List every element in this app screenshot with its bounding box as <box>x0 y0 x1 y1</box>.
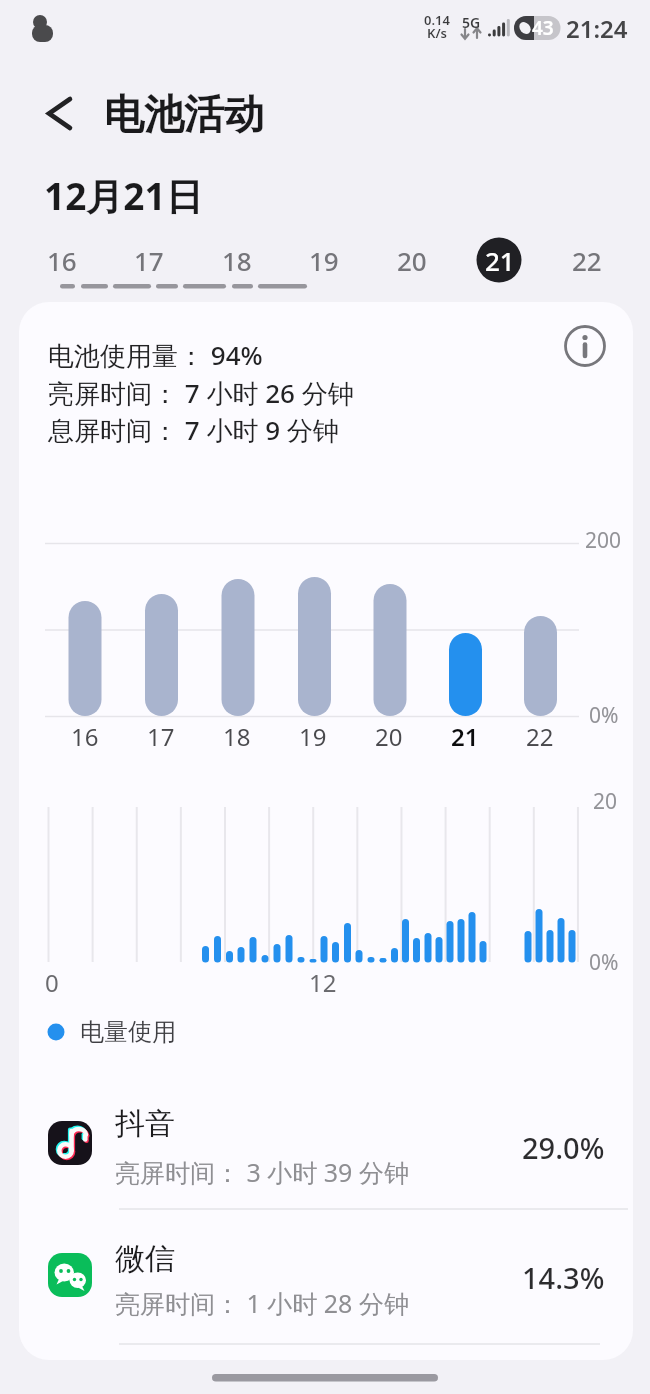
staticText: 19 <box>299 720 327 753</box>
staticText: 29.0% <box>522 1128 605 1167</box>
staticText: 12 <box>309 966 337 999</box>
button[interactable]: 22 <box>554 227 620 293</box>
staticText: 18 <box>222 243 252 278</box>
staticText: 0.14 <box>424 11 450 29</box>
staticText: 21 <box>485 243 515 278</box>
button[interactable]: 21 <box>467 227 533 293</box>
staticText: 电池使用量： 94% <box>48 337 263 373</box>
staticText: 微信 <box>115 1240 175 1278</box>
staticText: 0 <box>45 966 59 999</box>
staticText: 14.3% <box>522 1258 605 1297</box>
staticText: 21 <box>451 720 479 753</box>
staticText: 0% <box>589 701 619 730</box>
staticText: 16 <box>71 720 99 753</box>
staticText: 20 <box>375 720 403 753</box>
staticText: 22 <box>572 243 602 278</box>
button[interactable]: 20 <box>379 227 445 293</box>
button[interactable] <box>19 1090 633 1209</box>
staticText: 5G <box>462 13 481 32</box>
staticText: 抖音 <box>115 1105 175 1143</box>
button[interactable]: 19 <box>291 227 357 293</box>
staticText: 22 <box>526 720 554 753</box>
staticText: 电量使用 <box>80 1017 176 1047</box>
button[interactable]: 18 <box>204 227 270 293</box>
button[interactable] <box>36 86 92 142</box>
staticText: 亮屏时间： 1 小时 28 分钟 <box>115 1286 409 1320</box>
staticText: 200 <box>585 526 622 555</box>
staticText: 20 <box>397 243 427 278</box>
staticText: 19 <box>309 243 339 278</box>
button[interactable]: 17 <box>116 227 182 293</box>
button[interactable] <box>19 1210 633 1344</box>
button[interactable]: 16 <box>29 227 95 293</box>
staticText: 17 <box>134 243 164 278</box>
staticText: K/s <box>427 24 448 42</box>
staticText: 亮屏时间： 3 小时 39 分钟 <box>115 1155 409 1189</box>
staticText: 17 <box>147 720 175 753</box>
staticText: 电池活动 <box>104 89 264 139</box>
staticText: 16 <box>47 243 77 278</box>
button[interactable] <box>560 321 610 371</box>
staticText: 12月21日 <box>44 170 203 221</box>
staticText: 息屏时间： 7 小时 9 分钟 <box>48 412 339 448</box>
staticText: 21:24 <box>566 12 628 45</box>
staticText: 亮屏时间： 7 小时 26 分钟 <box>48 375 354 411</box>
staticText: 20 <box>593 787 618 816</box>
staticText: 43 <box>532 15 554 41</box>
staticText: 18 <box>223 720 251 753</box>
staticText: 0% <box>589 948 619 977</box>
